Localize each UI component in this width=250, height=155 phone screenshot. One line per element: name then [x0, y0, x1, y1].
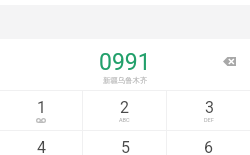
staticText: 4	[37, 138, 46, 155]
staticText: 2	[120, 98, 129, 117]
staticText: 0991	[99, 49, 151, 76]
button[interactable]: 3	[167, 91, 250, 130]
staticText: DEF	[204, 117, 214, 123]
button[interactable]: Delete	[215, 47, 243, 75]
button[interactable]: 1	[0, 91, 82, 130]
staticText: 1	[37, 98, 46, 117]
button[interactable]: 6	[167, 131, 250, 155]
staticText: 5	[121, 138, 130, 155]
staticText: 新疆乌鲁木齐	[103, 76, 148, 85]
button[interactable]: 2	[83, 91, 166, 130]
button[interactable]: 4	[0, 131, 82, 155]
staticText: ABC	[119, 117, 130, 123]
button[interactable]: 5	[83, 131, 166, 155]
staticText: 6	[204, 138, 213, 155]
staticText: 3	[205, 98, 214, 117]
